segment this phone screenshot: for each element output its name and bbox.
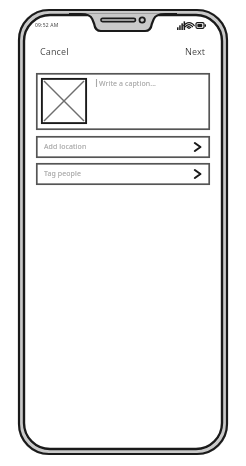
button[interactable]: Add location (36, 136, 210, 158)
button[interactable]: Selected photo (36, 73, 210, 130)
staticText: Add location (44, 142, 87, 152)
other: Selected photo (41, 78, 87, 124)
button[interactable]: Cancel (37, 42, 72, 60)
button[interactable]: Tag people (36, 163, 210, 185)
staticText: Next (185, 45, 206, 57)
staticText: Tag people (44, 169, 81, 179)
button[interactable]: Next (182, 42, 209, 60)
staticText: Write a caption... (99, 79, 157, 89)
staticText: Cancel (40, 45, 69, 57)
staticText: 09:52 AM (35, 22, 59, 29)
other: Add location (194, 142, 201, 152)
other: Tag people (194, 169, 201, 179)
